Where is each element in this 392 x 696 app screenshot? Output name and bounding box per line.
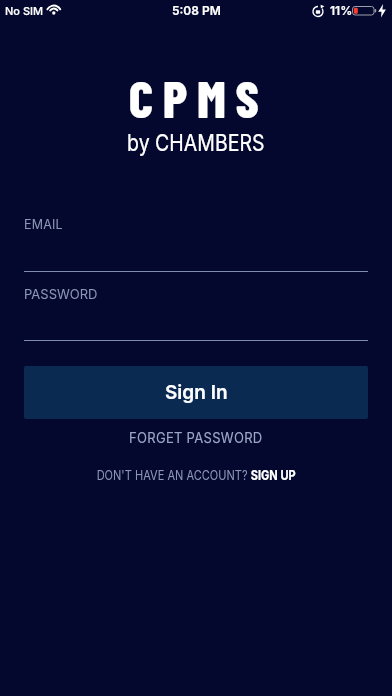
staticText: PASSWORD (24, 286, 98, 302)
button[interactable]: FORGET PASSWORD (129, 429, 263, 446)
staticText: No SIM (5, 4, 44, 17)
button[interactable]: Sign In (24, 366, 368, 419)
staticText: 5:08 PM (172, 3, 221, 18)
staticText: CPMS (129, 67, 269, 128)
button[interactable]: DON'T HAVE AN ACCOUNT? SIGN UP (97, 467, 296, 483)
staticText: EMAIL (24, 217, 63, 232)
staticText: 11% (330, 3, 353, 18)
staticText: by CHAMBERS (127, 128, 265, 156)
staticText: Sign In (165, 381, 228, 404)
